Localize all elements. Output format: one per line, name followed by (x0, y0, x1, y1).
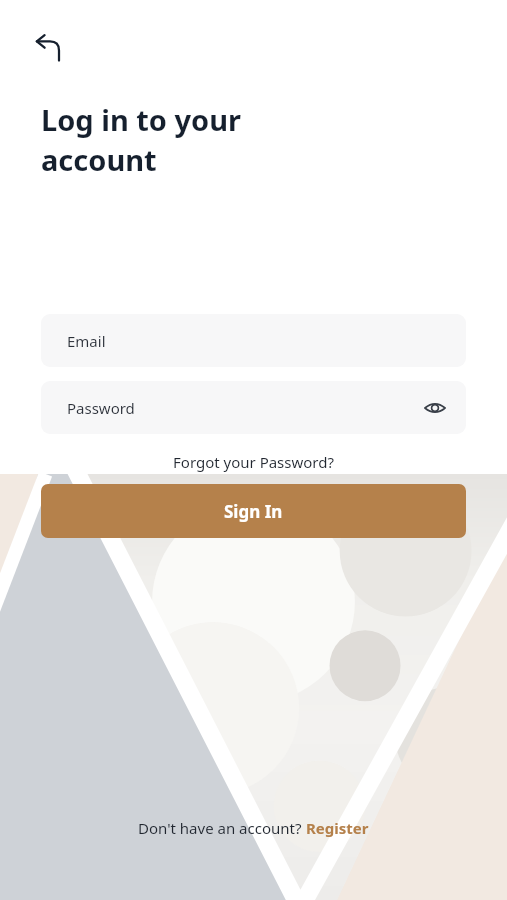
button[interactable]: Sign In (41, 484, 466, 538)
staticText: Sign In (224, 500, 283, 523)
button[interactable]: Password (41, 381, 466, 434)
button[interactable]: Email (41, 314, 466, 367)
staticText: Forgot your Password? (173, 452, 334, 472)
staticText: Register (306, 818, 369, 838)
staticText: Password (67, 398, 135, 418)
button[interactable]: Forgot your Password? (41, 446, 466, 478)
staticText: Email (67, 331, 106, 351)
staticText: Don't have an account? (138, 818, 306, 838)
button[interactable]: Don't have an account? (138, 818, 369, 838)
button[interactable]: Show password (418, 391, 452, 425)
staticText: Log in to your account (41, 100, 242, 180)
button[interactable]: Back (28, 26, 72, 70)
